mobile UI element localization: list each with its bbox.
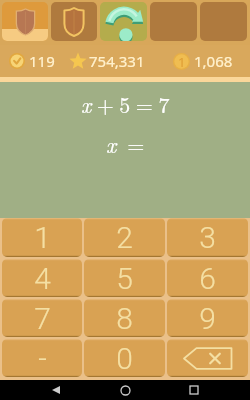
button[interactable]: 6 [167,259,248,297]
staticText: 1,068 [194,51,233,71]
button[interactable] [100,2,147,41]
button[interactable] [150,2,197,41]
button[interactable]: Backspace [167,339,248,377]
button[interactable] [51,2,97,41]
button[interactable]: 7 [2,299,82,337]
button[interactable]: - [2,339,82,377]
button[interactable]: Recents [181,380,207,400]
staticText: x = [106,128,145,159]
button[interactable]: 9 [167,299,248,337]
staticText: 2 [116,220,133,255]
staticText: 3 [199,220,216,255]
staticText: 8 [116,301,133,336]
button[interactable]: Home [112,380,138,400]
staticText: 0 [116,341,133,376]
button[interactable]: Back [43,380,69,400]
staticText: 7 [34,301,51,336]
button[interactable]: 4 [2,259,82,297]
staticText: 6 [199,261,216,296]
staticText: x + 5 = 7 [81,88,170,119]
staticText: 754,331 [89,51,145,71]
button[interactable]: 0 [84,339,165,377]
button[interactable]: 8 [84,299,165,337]
staticText: 9 [199,301,216,336]
button[interactable]: 5 [84,259,165,297]
staticText: - [38,341,47,376]
staticText: 1 [34,220,51,255]
button[interactable]: 3 [167,218,248,257]
button[interactable] [200,2,247,41]
button[interactable]: 1 [2,218,82,257]
staticText: 119 [29,51,55,71]
staticText: 5 [116,261,133,296]
staticText: 4 [34,261,51,296]
button[interactable]: 2 [84,218,165,257]
button[interactable] [2,2,48,41]
staticText: 1 [178,53,186,70]
